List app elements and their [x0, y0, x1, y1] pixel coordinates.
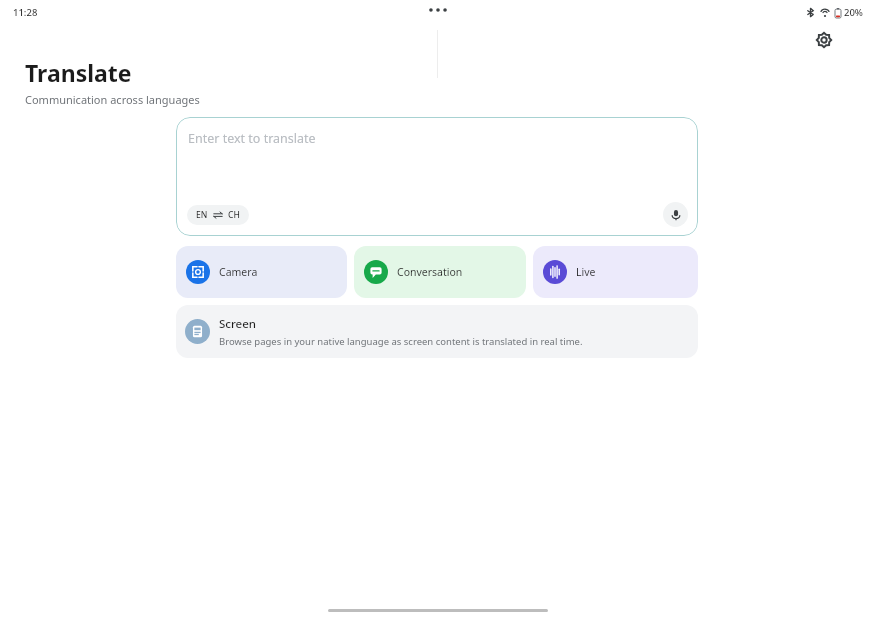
staticText: EN	[196, 209, 208, 221]
button[interactable]: Conversation	[354, 246, 526, 298]
button[interactable]: Screen	[176, 305, 698, 358]
button[interactable]: Settings	[810, 26, 838, 54]
staticText: CH	[228, 209, 240, 221]
button[interactable]: Voice input	[663, 202, 688, 227]
staticText: Camera	[219, 265, 258, 279]
staticText: Browse pages in your native language as …	[219, 335, 583, 348]
button[interactable]: Camera	[176, 246, 347, 298]
staticText: Communication across languages	[25, 92, 200, 107]
staticText: Live	[576, 265, 596, 279]
staticText: Conversation	[397, 265, 463, 279]
button[interactable]: Enter text to translate	[176, 117, 698, 236]
staticText: 11:28	[13, 6, 38, 19]
staticText: Translate	[25, 57, 132, 88]
staticText: Enter text to translate	[188, 130, 316, 147]
button[interactable]: EN	[187, 205, 249, 225]
staticText: Screen	[219, 316, 257, 332]
staticText: 20%	[844, 6, 863, 19]
button[interactable]: Live	[533, 246, 698, 298]
